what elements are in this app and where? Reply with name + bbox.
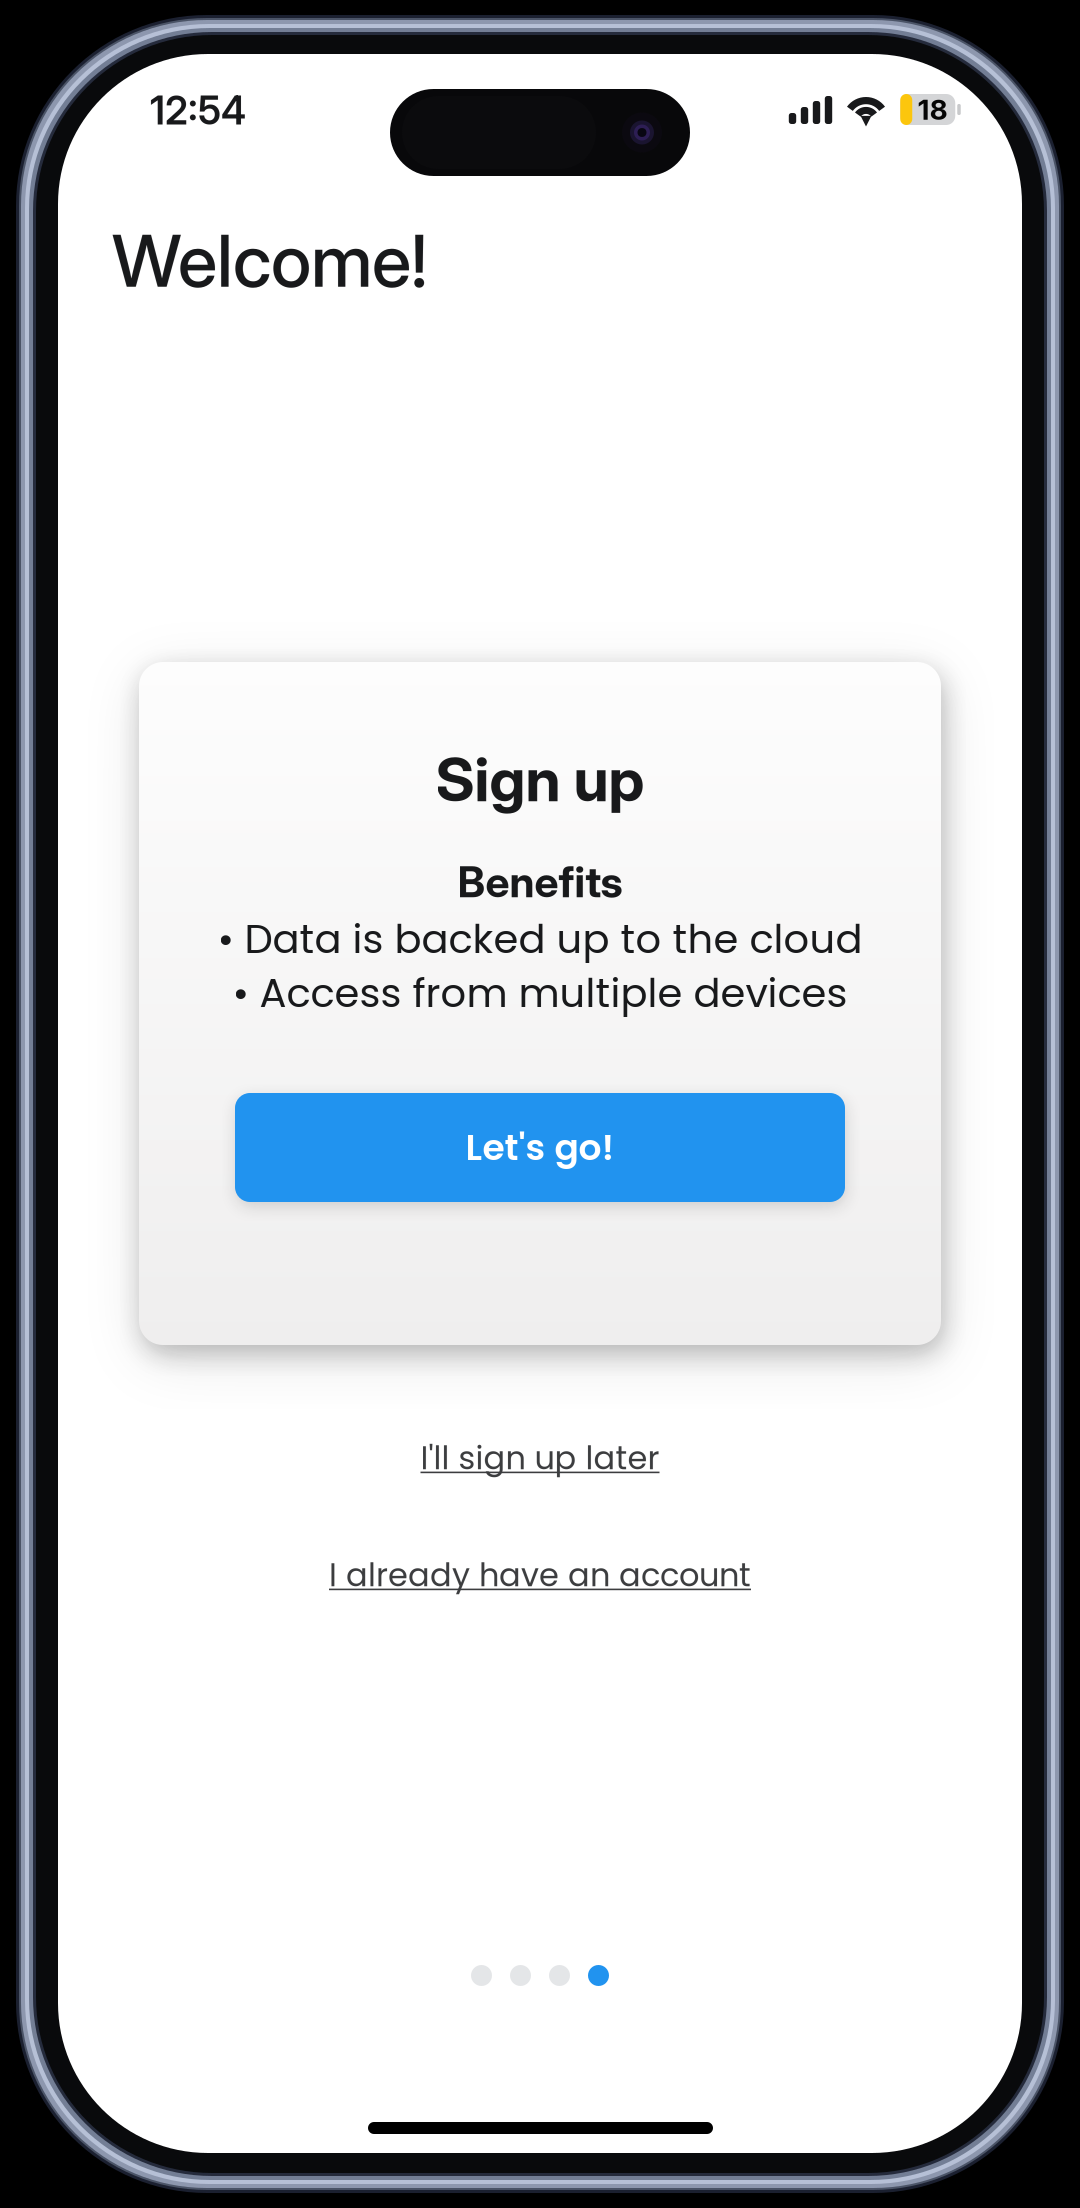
staticText: I'll sign up later [420,1436,659,1480]
staticText: I already have an account [329,1553,751,1597]
button[interactable]: I'll sign up later [58,1426,1022,1490]
staticText: • Data is backed up to the cloud [217,911,862,967]
staticText: Sign up [435,743,644,816]
staticText: 12:54 [150,87,246,134]
staticText: Welcome! [112,217,427,304]
staticText: • Access from multiple devices [232,965,847,1021]
staticText: 18 [918,93,948,126]
button[interactable]: Let's go! [235,1093,845,1202]
button[interactable]: I already have an account [58,1543,1022,1607]
staticText: Let's go! [465,1122,614,1173]
staticText: Benefits [457,856,622,908]
